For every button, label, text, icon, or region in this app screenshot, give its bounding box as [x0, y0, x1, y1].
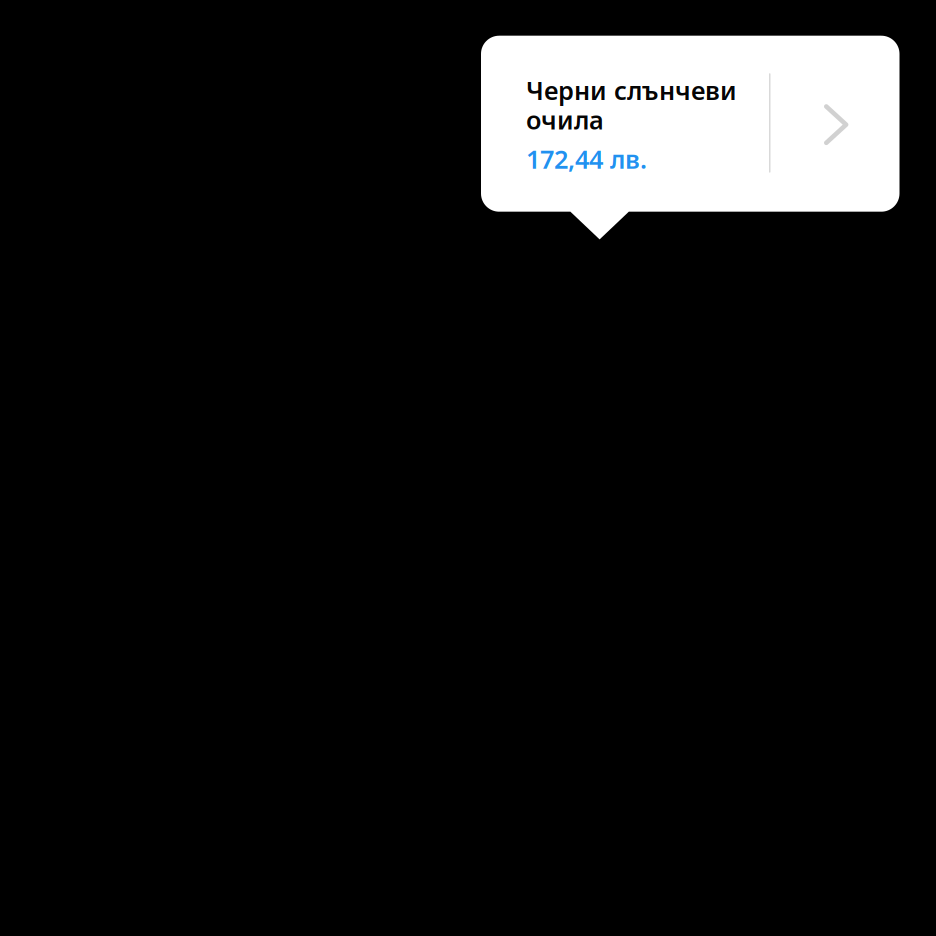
button[interactable]: Черни слънчеви очила, 172,44 лв. — [481, 36, 899, 239]
staticText: 172,44 лв. — [526, 142, 647, 176]
staticText: Черни слънчеви — [526, 73, 737, 107]
staticText: очила — [526, 103, 604, 136]
